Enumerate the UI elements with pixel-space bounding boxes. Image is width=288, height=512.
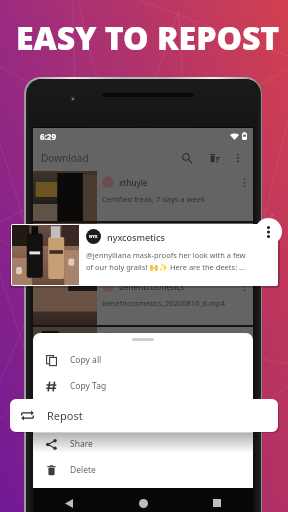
staticText: nyxcosmetics	[119, 229, 171, 240]
button[interactable]: More options	[255, 218, 282, 245]
staticText: EASY TO REPOST	[16, 16, 280, 60]
button[interactable]: Item menu	[237, 175, 251, 189]
button[interactable]: Repost	[10, 399, 278, 432]
staticText: nyxcosmetics	[107, 231, 165, 243]
staticText: benefitcosmetics	[119, 281, 185, 292]
button[interactable]: Delete	[33, 457, 253, 483]
button[interactable]: More options	[227, 147, 249, 169]
button[interactable]: nyxcosmetics	[33, 223, 253, 273]
staticText: Copy all	[70, 354, 102, 366]
staticText: xthuyle	[119, 177, 148, 188]
staticText: Delete	[70, 464, 96, 476]
staticText: Certified freak, 7 days a week	[102, 194, 205, 204]
staticText: of our holy grails! 🙌✨ Here are the deet…	[86, 262, 246, 272]
staticText: 6:29	[40, 131, 56, 142]
button[interactable]: Copy all	[33, 347, 253, 373]
staticText: Download	[41, 151, 89, 165]
button[interactable]: Item menu	[237, 331, 251, 345]
staticText: glossier	[119, 333, 149, 344]
staticText: benefitcosmetics_20200816_6.mp4	[102, 298, 225, 308]
staticText: Repost	[47, 408, 83, 423]
button[interactable]: Delete all	[204, 147, 226, 169]
button[interactable]: Item menu	[237, 279, 251, 293]
button[interactable]: xthuyle	[33, 171, 253, 221]
staticText: Share	[70, 438, 93, 450]
staticText: @jennylliana mask-proofs her look	[102, 246, 224, 256]
button[interactable]: Search	[176, 147, 198, 169]
staticText: NYX	[89, 234, 98, 239]
button[interactable]: Home	[133, 493, 153, 512]
button[interactable]: glossier	[33, 327, 253, 377]
button[interactable]: benefitcosmetics	[33, 275, 253, 325]
staticText: Copy Tag	[70, 380, 107, 392]
staticText: @jennylliana mask-proofs her look with a…	[86, 250, 246, 260]
button[interactable]: Copy Tag	[33, 373, 253, 399]
button[interactable]: Share	[33, 431, 253, 457]
button[interactable]: Recents	[207, 493, 227, 512]
button[interactable]: NYX	[11, 224, 278, 286]
button[interactable]: Back	[59, 493, 79, 512]
